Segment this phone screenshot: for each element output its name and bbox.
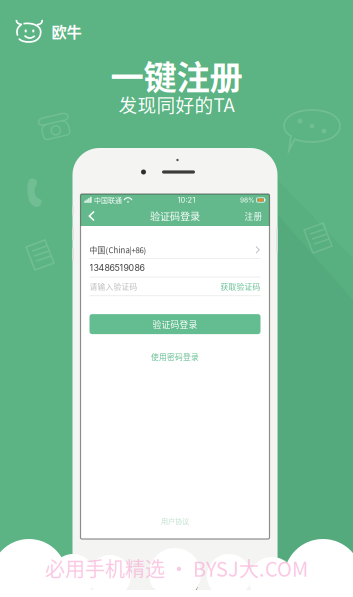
staticText: 获取验证码 — [220, 281, 260, 292]
button[interactable]: 欧牛 — [14, 19, 81, 43]
staticText: 请输入验证码 — [89, 281, 137, 292]
staticText: 注册 — [244, 210, 262, 222]
button[interactable]: 使用密码登录 — [148, 348, 202, 365]
staticText: 中国(China|+86) — [89, 244, 146, 256]
button[interactable]: 获取验证码 — [220, 281, 260, 292]
staticText: 验证码登录 — [152, 318, 197, 330]
staticText: 98% — [240, 196, 255, 204]
staticText: 一键注册 — [110, 51, 242, 99]
staticText: 发现同好的TA — [118, 90, 234, 117]
button[interactable]: 用户协议 — [158, 513, 192, 529]
staticText: 必用手机精选 · BYSJ大.COM — [45, 553, 308, 582]
staticText: 13486519086 — [89, 262, 144, 273]
staticText: 使用密码登录 — [151, 351, 199, 362]
staticText: 用户协议 — [161, 516, 189, 526]
staticText: 中国联通 — [92, 195, 124, 205]
staticText: 欧牛 — [51, 20, 81, 42]
button[interactable]: 中国(China|+86) — [80, 242, 269, 258]
staticText: 验证码登录 — [150, 209, 200, 223]
staticText: 10:21 — [178, 195, 196, 204]
button[interactable]: 注册 — [239, 207, 267, 225]
button[interactable]: Back — [82, 207, 101, 225]
button[interactable]: 验证码登录 — [89, 314, 260, 334]
